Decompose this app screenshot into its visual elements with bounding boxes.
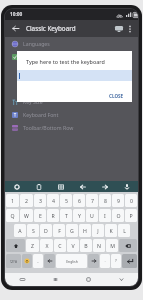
staticText: 7: [91, 197, 94, 204]
button[interactable]: G: [66, 224, 78, 237]
button[interactable]: Previous: [44, 254, 55, 268]
button[interactable]: 5: [60, 194, 72, 207]
staticText: H: [83, 227, 87, 234]
staticText: A: [18, 227, 22, 234]
staticText: 10:00: [10, 11, 23, 18]
button[interactable]: Shift: [6, 239, 25, 252]
button[interactable]: W: [20, 209, 33, 222]
button[interactable]: Backspace: [119, 239, 137, 252]
button[interactable]: 7: [86, 194, 98, 207]
staticText: P: [129, 212, 133, 219]
button[interactable]: S: [27, 224, 39, 237]
staticText: T: [65, 212, 68, 219]
button[interactable]: Keyboard Font: [5, 108, 138, 121]
button[interactable]: English: [56, 254, 87, 268]
staticText: I: [104, 212, 106, 219]
button[interactable]: O: [112, 209, 124, 222]
button[interactable]: Enter: [122, 254, 137, 268]
button[interactable]: 1: [6, 194, 19, 207]
staticText: F: [58, 227, 61, 234]
button[interactable]: Key Size: [5, 95, 138, 108]
button[interactable]: .: [100, 254, 110, 268]
button[interactable]: 8: [99, 194, 111, 207]
staticText: R: [51, 212, 55, 219]
button[interactable]: Voice: [116, 181, 138, 192]
button[interactable]: Toolbar/Bottom Row: [5, 121, 138, 134]
button[interactable]: Q: [6, 209, 19, 222]
button[interactable]: B: [80, 239, 92, 252]
staticText: Languages: [23, 40, 50, 47]
button[interactable]: More options: [125, 24, 134, 33]
staticText: S: [32, 227, 35, 234]
button[interactable]: Right: [94, 181, 116, 192]
staticText: 0: [130, 197, 133, 204]
staticText: C: [58, 242, 62, 249]
button[interactable]: Grid: [50, 181, 72, 192]
staticText: U: [90, 212, 94, 219]
button[interactable]: 6: [73, 194, 85, 207]
staticText: K: [109, 227, 113, 234]
button[interactable]: !2?#: [6, 254, 21, 268]
button[interactable]: D: [40, 224, 52, 237]
button[interactable]: J: [92, 224, 104, 237]
button[interactable]: C: [54, 239, 66, 252]
button[interactable]: Next: [88, 254, 99, 268]
button[interactable]: Languages: [5, 37, 138, 50]
staticText: B: [84, 242, 88, 249]
button[interactable]: L: [118, 224, 130, 237]
staticText: CLOSE: [109, 93, 124, 99]
button[interactable]: A: [14, 224, 26, 237]
button[interactable]: 0: [125, 194, 137, 207]
button[interactable]: Y: [73, 209, 85, 222]
button[interactable]: 4: [47, 194, 59, 207]
button[interactable]: Keyboard switch: [5, 273, 39, 286]
button[interactable]: [5, 68, 138, 81]
staticText: Y: [78, 212, 81, 219]
button[interactable]: Predictions & Corrections: [5, 50, 138, 63]
button[interactable]: Back: [9, 22, 22, 35]
button[interactable]: F: [53, 224, 65, 237]
button[interactable]: ?: [111, 254, 121, 268]
button[interactable]: I: [99, 209, 111, 222]
button[interactable]: R: [47, 209, 59, 222]
button[interactable]: P: [125, 209, 137, 222]
staticText: Keyboard Font: [23, 111, 59, 118]
button[interactable]: Home: [72, 273, 105, 286]
button[interactable]: 9: [112, 194, 124, 207]
staticText: English: [66, 259, 78, 264]
staticText: D: [44, 227, 48, 234]
button[interactable]: V: [67, 239, 79, 252]
staticText: G: [70, 227, 74, 234]
button[interactable]: M: [106, 239, 118, 252]
staticText: .: [104, 258, 106, 264]
button[interactable]: 2: [20, 194, 33, 207]
button[interactable]: T: [60, 209, 72, 222]
button[interactable]: E: [34, 209, 46, 222]
button[interactable]: Hide keyboard: [105, 273, 138, 286]
staticText: Type here to test the keyboard: [26, 58, 105, 65]
button[interactable]: X: [40, 239, 53, 252]
staticText: W: [24, 212, 29, 219]
button[interactable]: Settings: [5, 181, 28, 192]
button[interactable]: U: [86, 209, 98, 222]
button[interactable]: Keyboard preview: [112, 22, 125, 35]
staticText: L: [123, 227, 126, 234]
staticText: !2?#: [10, 259, 17, 264]
button[interactable]: Recents: [39, 273, 72, 286]
staticText: 3: [39, 197, 42, 204]
button[interactable]: 3: [34, 194, 46, 207]
button[interactable]: Clipboard: [28, 181, 50, 192]
button[interactable]: CLOSE: [101, 90, 132, 102]
staticText: N: [97, 242, 101, 249]
staticText: J: [97, 227, 99, 234]
button[interactable]: ,: [33, 254, 43, 268]
staticText: 4: [52, 197, 55, 204]
button[interactable]: Emoji: [22, 254, 32, 268]
button[interactable]: Left: [72, 181, 94, 192]
button[interactable]: K: [105, 224, 117, 237]
button[interactable]: H: [79, 224, 91, 237]
staticText: Key Size: [23, 98, 43, 105]
button[interactable]: N: [93, 239, 105, 252]
button[interactable]: Z: [26, 239, 39, 252]
